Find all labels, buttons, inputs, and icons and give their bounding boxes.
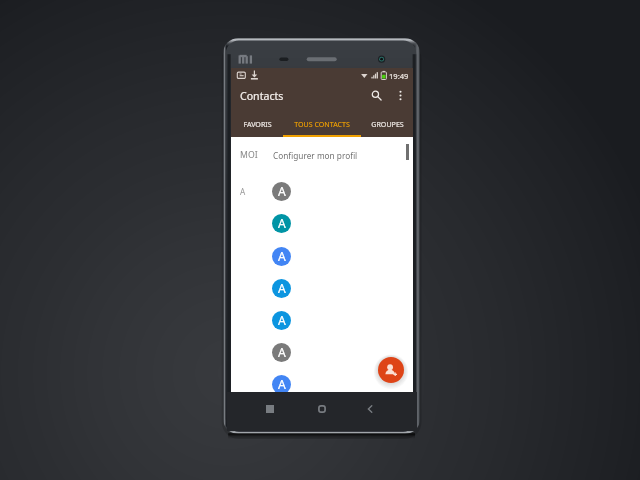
- button[interactable]: Back: [359, 398, 381, 420]
- button[interactable]: A: [231, 175, 413, 207]
- button[interactable]: A: [231, 368, 413, 400]
- button[interactable]: GROUPES: [361, 110, 413, 137]
- staticText: 19:49: [389, 71, 409, 81]
- staticText: Configurer mon profil: [273, 150, 358, 161]
- staticText: A: [240, 186, 246, 197]
- button[interactable]: TOUS CONTACTS: [283, 110, 361, 137]
- button[interactable]: MOI: [231, 144, 413, 166]
- staticText: A: [278, 312, 286, 329]
- button[interactable]: FAVORIS: [231, 110, 283, 137]
- staticText: FAVORIS: [243, 119, 272, 129]
- button[interactable]: More options: [389, 84, 411, 106]
- button[interactable]: Home: [311, 398, 333, 420]
- staticText: Contacts: [240, 89, 284, 103]
- staticText: A: [278, 183, 286, 200]
- button[interactable]: A: [231, 336, 413, 368]
- staticText: A: [278, 376, 286, 393]
- staticText: A: [278, 280, 286, 297]
- button[interactable]: A: [231, 272, 413, 304]
- button[interactable]: A: [231, 207, 413, 239]
- staticText: A: [278, 344, 286, 361]
- button[interactable]: Recents: [259, 398, 281, 420]
- staticText: MOI: [240, 149, 258, 161]
- button[interactable]: A: [231, 240, 413, 272]
- staticText: TOUS CONTACTS: [294, 119, 350, 129]
- button[interactable]: Search: [365, 84, 387, 106]
- button[interactable]: Add contact: [378, 357, 404, 383]
- button[interactable]: A: [231, 304, 413, 336]
- staticText: GROUPES: [371, 119, 404, 129]
- staticText: A: [278, 248, 286, 265]
- staticText: A: [278, 215, 286, 232]
